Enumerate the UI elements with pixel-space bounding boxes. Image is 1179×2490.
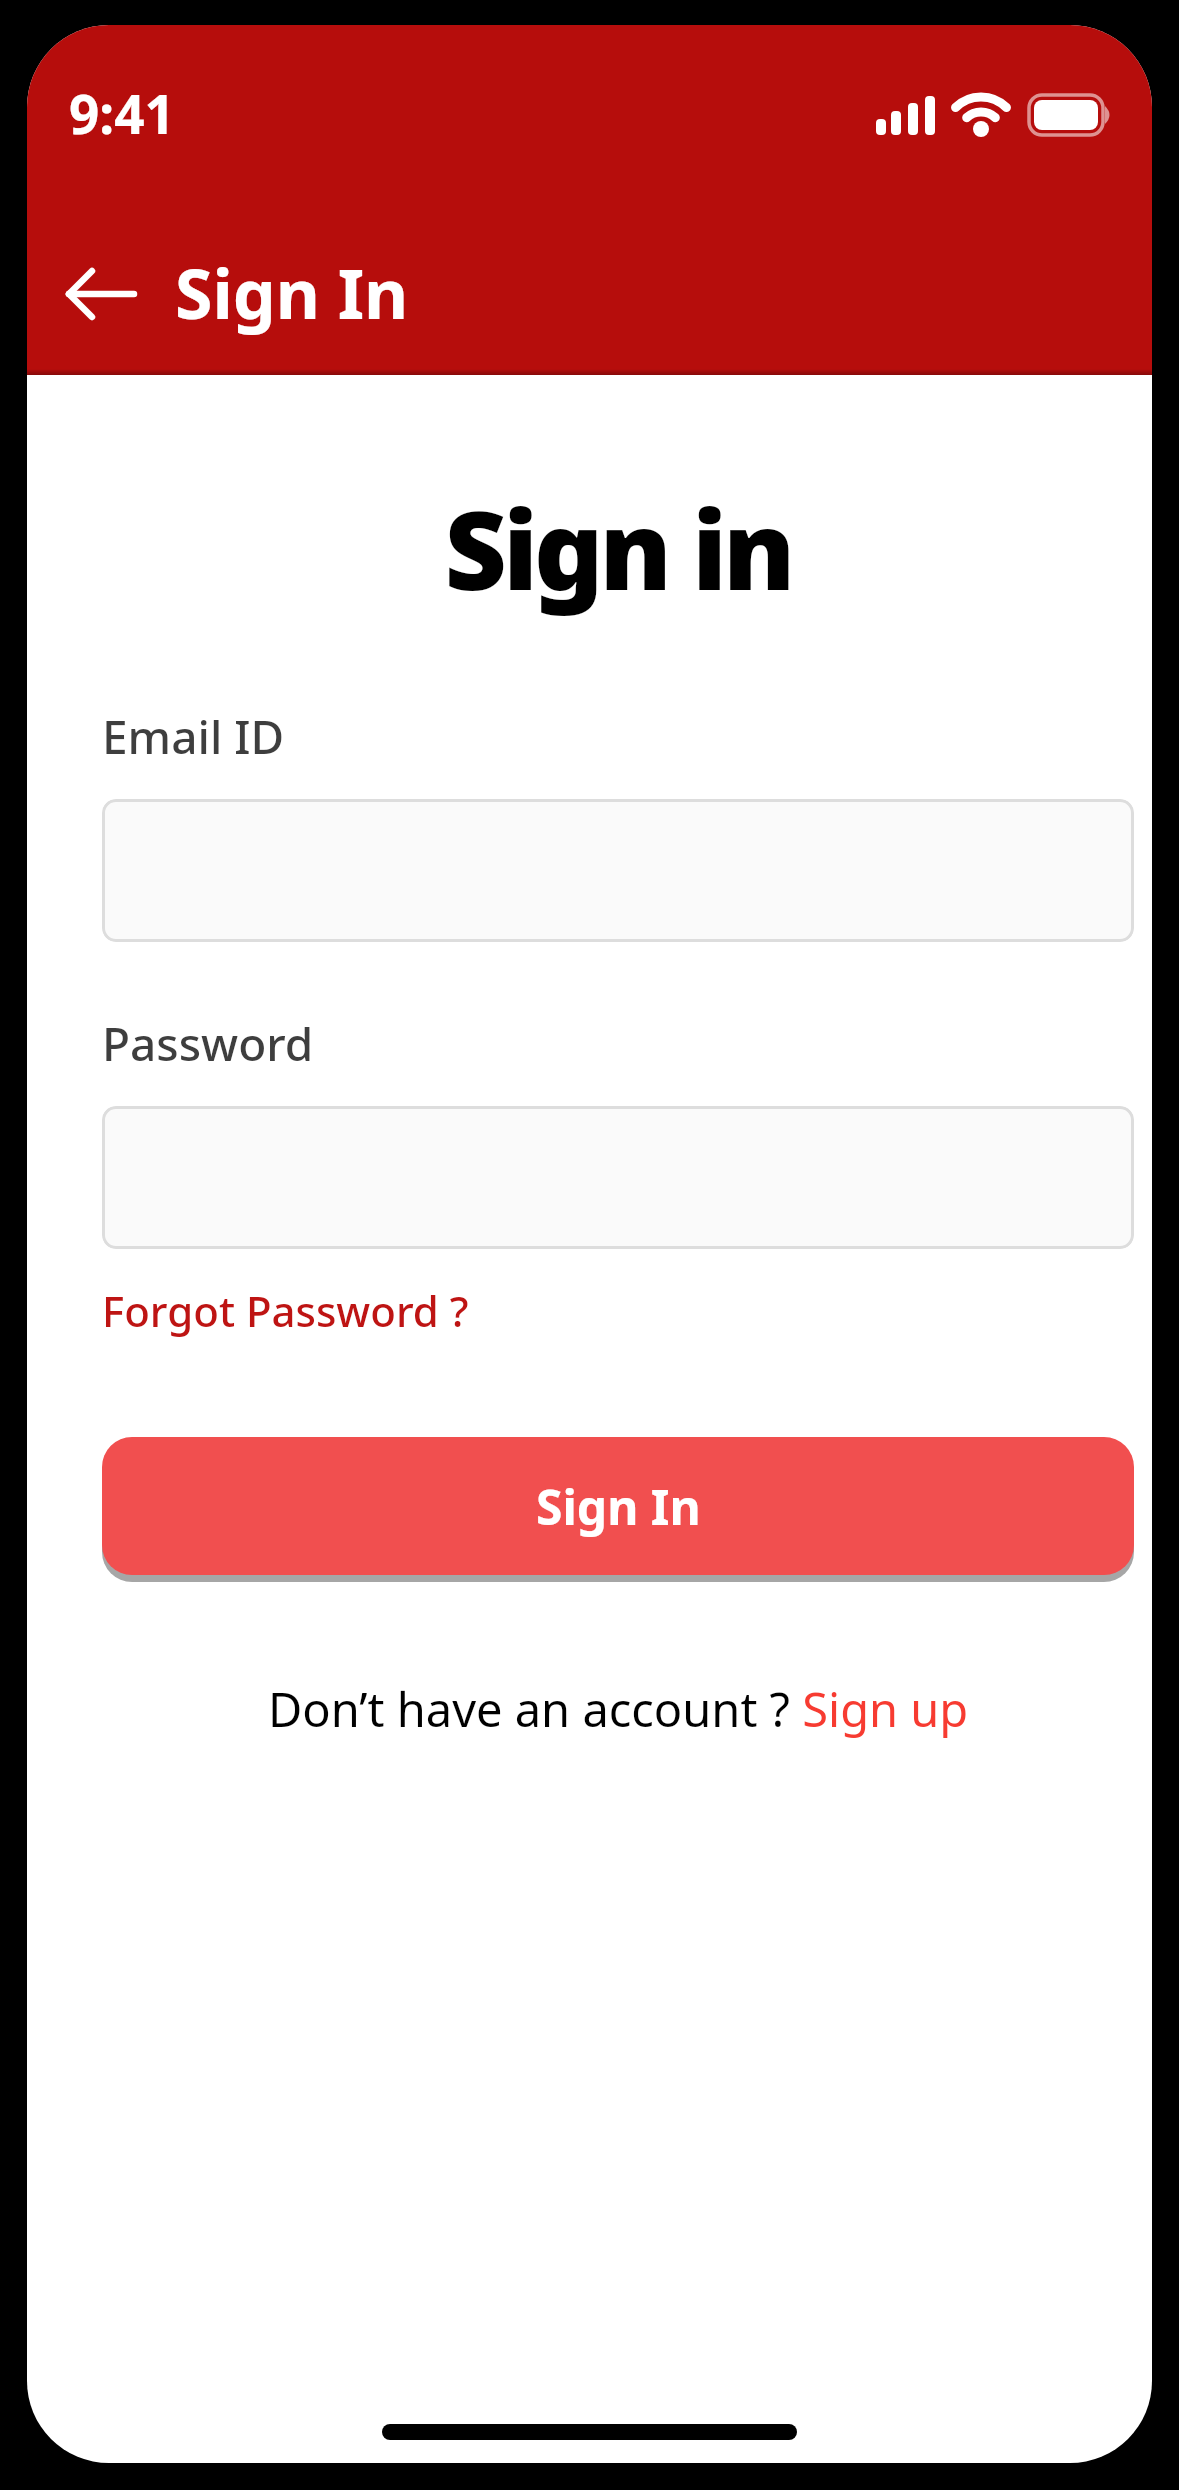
- staticText: 9:41: [69, 77, 175, 149]
- button[interactable]: [102, 799, 1134, 942]
- staticText: Password: [102, 1012, 314, 1075]
- staticText: Sign In: [536, 1474, 701, 1539]
- button[interactable]: Forgot Password ?: [102, 1282, 469, 1339]
- staticText: Sign in: [102, 475, 1134, 622]
- button[interactable]: Sign In: [102, 1437, 1134, 1575]
- button[interactable]: Don’t have an account ? Sign up: [268, 1677, 969, 1741]
- button[interactable]: Sign In: [175, 246, 409, 339]
- staticText: Email ID: [102, 705, 285, 768]
- button[interactable]: [102, 1106, 1134, 1249]
